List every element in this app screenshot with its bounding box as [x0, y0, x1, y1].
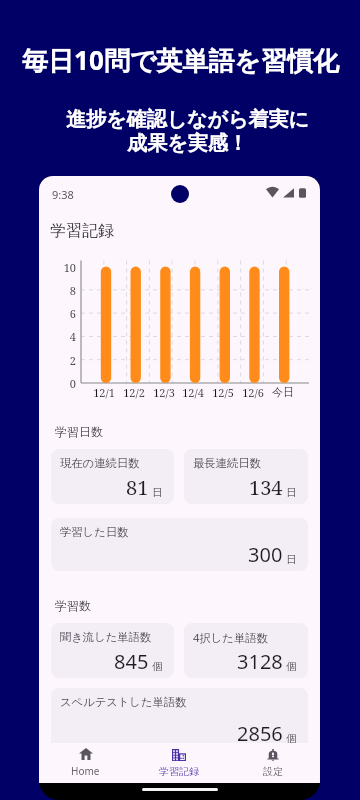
staticText: 134	[249, 474, 283, 501]
staticText: 12/4	[179, 385, 207, 400]
other: 設定	[266, 749, 280, 761]
staticText: 進捗を確認しながら着実に 成果を実感！	[66, 107, 309, 155]
staticText: 8	[39, 283, 76, 298]
button[interactable]: 現在の連続日数	[51, 449, 174, 504]
staticText: 最長連続日数	[193, 456, 261, 470]
button[interactable]: スペルテストした単語数	[51, 688, 308, 750]
staticText: 日	[286, 553, 297, 566]
button[interactable]: 設定	[226, 743, 320, 783]
other: Home	[79, 748, 93, 760]
button[interactable]: Home	[39, 743, 132, 783]
button[interactable]: 聞き流した単語数	[51, 623, 174, 678]
staticText: 845	[114, 648, 149, 675]
other: 学習記録	[172, 749, 186, 761]
staticText: 個	[152, 660, 163, 673]
button[interactable]: 学習記録	[132, 743, 226, 783]
staticText: 4択した単語数	[193, 630, 268, 645]
staticText: 2856	[237, 720, 283, 747]
button[interactable]: 最長連続日数	[184, 449, 308, 504]
staticText: 聞き流した単語数	[60, 630, 152, 644]
staticText: 日	[152, 486, 163, 499]
staticText: 12/3	[150, 385, 178, 400]
staticText: 毎日10問で英単語を習慣化	[22, 42, 339, 78]
button[interactable]: 4択した単語数	[184, 623, 308, 678]
staticText: 日	[286, 486, 297, 499]
staticText: 2	[39, 353, 76, 368]
staticText: 学習日数	[55, 424, 103, 439]
staticText: 4	[39, 329, 76, 344]
staticText: 12/1	[90, 385, 118, 400]
staticText: 12/5	[209, 385, 237, 400]
staticText: 10	[39, 260, 76, 275]
staticText: 今日	[269, 385, 297, 399]
staticText: 9:38	[52, 187, 74, 202]
staticText: 学習記録	[50, 221, 114, 241]
staticText: 12/2	[120, 385, 148, 400]
staticText: 6	[39, 306, 76, 321]
staticText: 81	[126, 474, 149, 501]
button[interactable]: 学習した日数	[51, 518, 308, 571]
staticText: スペルテストした単語数	[60, 695, 187, 709]
staticText: 学習数	[55, 598, 91, 613]
staticText: 0	[39, 376, 76, 391]
staticText: 設定	[263, 765, 283, 778]
staticText: 現在の連続日数	[60, 456, 140, 470]
staticText: 個	[286, 732, 297, 745]
staticText: 300	[248, 541, 283, 568]
staticText: 学習記録	[159, 765, 199, 778]
staticText: 3128	[237, 648, 283, 675]
staticText: 12/6	[239, 385, 267, 400]
staticText: 個	[286, 660, 297, 673]
staticText: Home	[71, 764, 100, 778]
staticText: 学習した日数	[60, 525, 129, 539]
